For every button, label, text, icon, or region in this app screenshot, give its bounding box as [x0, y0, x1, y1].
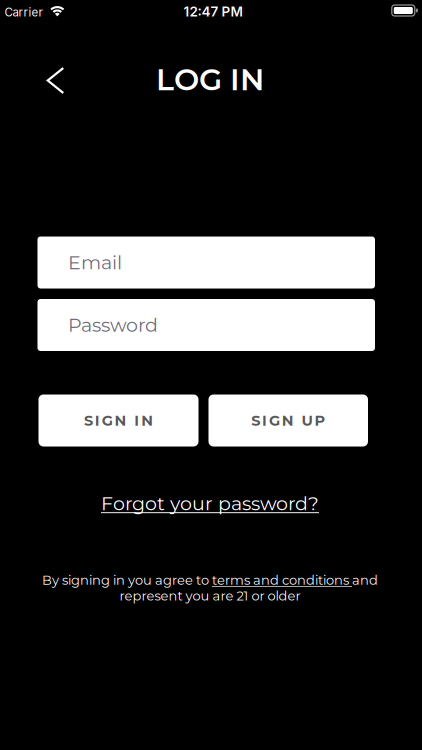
staticText: represent you are 21 or older — [119, 588, 300, 604]
staticText: Password — [68, 313, 158, 337]
staticText: 12:47 PM — [183, 3, 242, 20]
staticText: LOG IN — [156, 61, 264, 98]
staticText: Email — [68, 251, 122, 274]
staticText: SIGN UP — [251, 412, 325, 429]
staticText: SIGN IN — [84, 412, 153, 429]
staticText: By signing in you agree to terms and con… — [42, 572, 378, 588]
staticText: Carrier — [4, 5, 42, 19]
staticText: Forgot your password? — [101, 492, 319, 515]
